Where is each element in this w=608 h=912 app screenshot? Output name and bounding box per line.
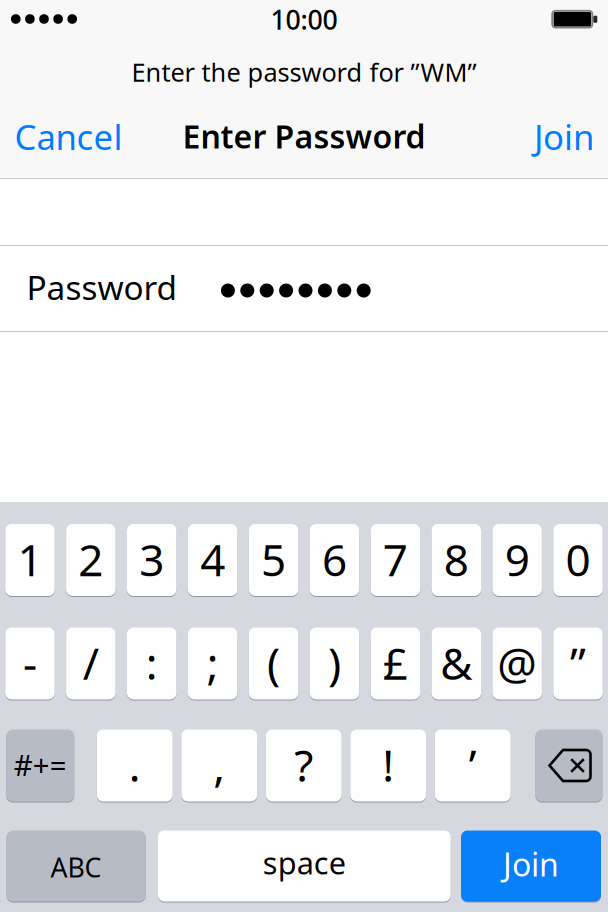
staticText: £	[383, 633, 408, 692]
button[interactable]: Delete	[535, 728, 602, 802]
button[interactable]: 6	[310, 523, 359, 597]
staticText: Enter the password for ”WM”	[131, 55, 476, 89]
staticText: @	[497, 633, 537, 692]
staticText: /	[83, 633, 99, 692]
button[interactable]: Join	[517, 100, 608, 172]
staticText: 9	[505, 530, 530, 588]
button[interactable]: 0	[553, 523, 603, 597]
button[interactable]: ,	[181, 728, 257, 802]
button[interactable]: :	[127, 626, 176, 700]
staticText: (	[267, 633, 280, 692]
button[interactable]: #+=	[6, 728, 74, 802]
button[interactable]: space	[158, 829, 451, 902]
staticText: -	[23, 633, 37, 692]
button[interactable]: Cancel	[0, 100, 139, 172]
staticText: #+=	[14, 745, 67, 784]
button[interactable]: ”	[553, 626, 603, 700]
staticText: 0	[565, 530, 590, 588]
button[interactable]: Password	[0, 246, 608, 331]
button[interactable]: 2	[66, 523, 116, 597]
staticText: :	[146, 633, 158, 692]
button[interactable]: ’	[435, 728, 511, 802]
staticText: !	[382, 735, 394, 794]
staticText: ”	[570, 633, 586, 692]
staticText: ’	[469, 735, 477, 794]
button[interactable]: 1	[5, 523, 55, 597]
staticText: 1	[17, 530, 42, 588]
staticText: 2	[78, 530, 103, 588]
button[interactable]: /	[66, 626, 116, 700]
staticText: ?	[294, 735, 313, 794]
button[interactable]: 3	[127, 523, 176, 597]
button[interactable]: )	[310, 626, 359, 700]
staticText: ;	[207, 633, 219, 692]
staticText: Join	[503, 843, 559, 885]
staticText: 7	[383, 530, 408, 588]
button[interactable]: 9	[492, 523, 542, 597]
button[interactable]: 4	[188, 523, 237, 597]
staticText: 3	[139, 530, 164, 588]
staticText: Password	[26, 265, 177, 309]
staticText: ,	[213, 735, 225, 794]
staticText: )	[328, 633, 341, 692]
button[interactable]: 7	[371, 523, 420, 597]
button[interactable]: £	[371, 626, 420, 700]
button[interactable]: !	[350, 728, 426, 802]
staticText: 5	[261, 530, 286, 588]
button[interactable]: &	[431, 626, 481, 700]
button[interactable]: Join	[461, 829, 601, 902]
staticText: space	[263, 842, 346, 883]
staticText: Enter Password	[182, 115, 425, 157]
button[interactable]: (	[249, 626, 298, 700]
staticText: Cancel	[14, 113, 122, 159]
button[interactable]: ;	[188, 626, 237, 700]
staticText: .	[129, 735, 141, 794]
staticText: &	[440, 633, 472, 692]
button[interactable]: 8	[431, 523, 481, 597]
button[interactable]: -	[5, 626, 55, 700]
staticText: Join	[534, 113, 594, 159]
staticText: 10:00	[270, 2, 337, 37]
button[interactable]: ABC	[7, 829, 146, 902]
button[interactable]: ?	[266, 728, 342, 802]
button[interactable]: 5	[249, 523, 298, 597]
staticText: 8	[444, 530, 469, 588]
button[interactable]: @	[492, 626, 542, 700]
staticText: 6	[322, 530, 347, 588]
button[interactable]: .	[97, 728, 173, 802]
staticText: ABC	[51, 849, 102, 885]
staticText: 4	[200, 530, 225, 588]
